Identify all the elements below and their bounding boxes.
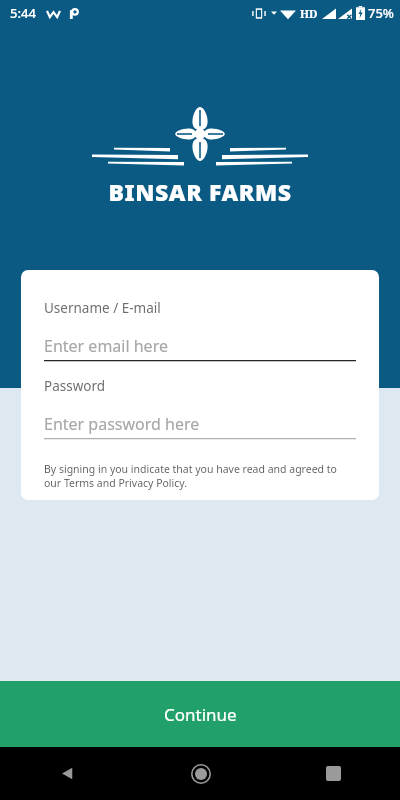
staticText: BINSAR FARMS	[108, 176, 292, 207]
staticText: Enter email here	[44, 335, 168, 357]
button[interactable]: Enter password here	[44, 410, 356, 438]
staticText: Password	[44, 377, 106, 395]
staticText: 75%	[368, 4, 394, 22]
staticText: Continue	[164, 703, 237, 726]
button[interactable]: Continue	[0, 681, 400, 747]
staticText: Enter password here	[44, 413, 200, 435]
button[interactable]: Recent apps	[267, 747, 400, 800]
button[interactable]: Back	[0, 747, 134, 800]
staticText: By signing in you indicate that you have…	[44, 462, 356, 490]
button[interactable]: Home	[134, 747, 267, 800]
staticText: HD	[300, 6, 318, 21]
button[interactable]: Enter email here	[44, 332, 356, 360]
staticText: 5:44	[10, 4, 36, 22]
staticText: Username / E-mail	[44, 299, 161, 317]
